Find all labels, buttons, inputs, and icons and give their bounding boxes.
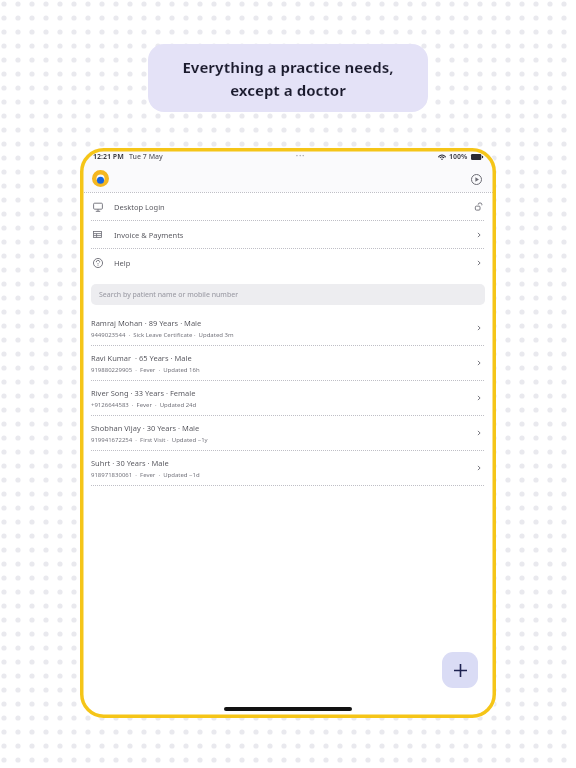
staticText: River Song · 33 Years · Female [91,388,196,398]
button[interactable]: Shobhan Vijay · 30 Years · Male [80,416,496,450]
staticText: 918971830061 · Fever · Updated ~1d [91,471,200,479]
button[interactable]: River Song · 33 Years · Female [80,381,496,415]
button[interactable]: Ravi Kumar · 65 Years · Male [80,346,496,380]
staticText: Shobhan Vijay · 30 Years · Male [91,423,200,433]
button[interactable]: App logo [92,170,109,187]
staticText: Suhrt · 30 Years · Male [91,458,169,468]
staticText: except a doctor [230,80,346,100]
staticText: 100% [449,152,468,162]
staticText: Help [114,258,131,268]
button[interactable]: Recent activity [468,171,484,187]
staticText: Ramraj Mohan · 89 Years · Male [91,318,202,328]
button[interactable]: Invoice & Payments [80,221,496,248]
staticText: Ravi Kumar · 65 Years · Male [91,353,192,363]
staticText: Search by patient name or mobile number [99,290,239,300]
staticText: • • • [296,153,305,160]
staticText: Everything a practice needs, [182,57,394,77]
staticText: Desktop Login [114,202,165,212]
staticText: 919941672254 · First Visit · Updated ~1y [91,436,208,444]
staticText: +9126644583 · Fever · Updated 24d [91,401,197,409]
staticText: 9449023544 · Sick Leave Certificate · Up… [91,331,234,339]
button[interactable]: Suhrt · 30 Years · Male [80,451,496,485]
button[interactable]: Ramraj Mohan · 89 Years · Male [80,311,496,345]
button[interactable]: Add patient [442,652,478,688]
staticText: Invoice & Payments [114,230,184,240]
button[interactable]: Search by patient name or mobile number [91,284,485,305]
staticText: Tue 7 May [129,152,163,162]
button[interactable]: Desktop Login [80,193,496,220]
staticText: 12:21 PM [93,152,124,162]
staticText: 919880229905 · Fever · Updated 16h [91,366,200,374]
button[interactable]: Help [80,249,496,276]
